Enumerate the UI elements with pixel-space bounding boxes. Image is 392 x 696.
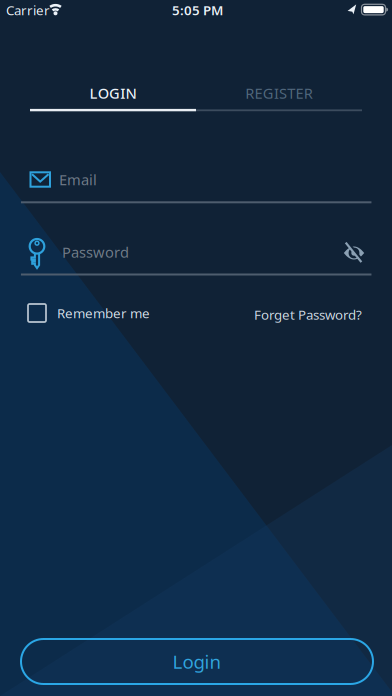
staticText: 5:05 PM [172, 1, 223, 19]
staticText: LOGIN [90, 83, 136, 103]
staticText: Remember me [57, 304, 150, 322]
button[interactable]: Forget Password? [162, 306, 392, 323]
button[interactable]: Login [21, 639, 373, 684]
staticText: Password [62, 242, 129, 262]
button[interactable]: Show password [339, 237, 369, 267]
staticText: REGISTER [245, 83, 313, 103]
staticText: Forget Password? [254, 306, 362, 323]
staticText: Carrier [6, 1, 50, 19]
staticText: Email [59, 170, 97, 189]
staticText: Login [172, 649, 221, 674]
button[interactable]: LOGIN [30, 78, 196, 108]
button[interactable]: REGISTER [196, 78, 362, 108]
button[interactable]: Remember me [0, 304, 220, 322]
